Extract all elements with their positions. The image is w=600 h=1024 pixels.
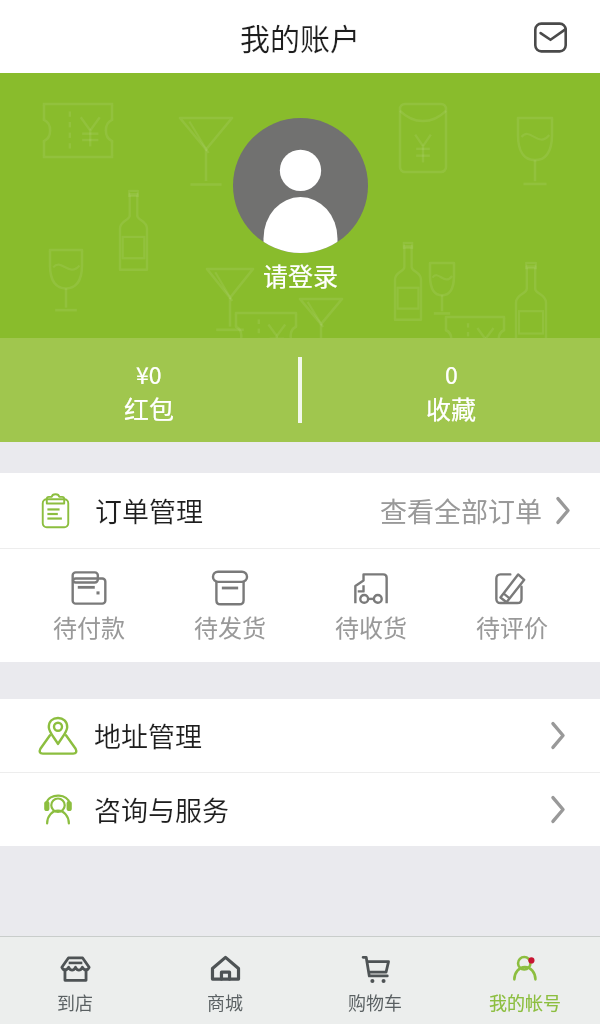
button[interactable]: 待收货 (300, 549, 441, 662)
staticText: 收藏 (426, 390, 477, 426)
staticText: 咨询与服务 (94, 790, 229, 829)
staticText: 我的帐号 (489, 989, 561, 1015)
staticText: 购物车 (348, 989, 402, 1015)
staticText: 待收货 (335, 609, 407, 644)
button[interactable]: 咨询与服务 (0, 773, 600, 846)
staticText: 0 (445, 357, 458, 390)
staticText: ¥0 (136, 357, 162, 390)
button[interactable]: 待评价 (441, 549, 582, 662)
staticText: 待评价 (476, 609, 548, 644)
staticText: 待付款 (53, 609, 125, 644)
button[interactable]: 购物车 (300, 937, 450, 1024)
button[interactable]: 到店 (0, 937, 150, 1024)
staticText: 红包 (124, 390, 175, 426)
button[interactable]: 商城 (150, 937, 300, 1024)
staticText: 我的账户 (240, 15, 360, 58)
button[interactable]: Avatar (233, 118, 368, 253)
staticText: 地址管理 (94, 716, 202, 755)
staticText: 商城 (207, 989, 243, 1015)
staticText: 订单管理 (95, 491, 203, 530)
button[interactable]: ¥0 (0, 354, 298, 426)
staticText: 到店 (57, 989, 93, 1015)
button[interactable]: Messages (524, 11, 576, 63)
button[interactable]: 待付款 (18, 549, 159, 662)
staticText: 待发货 (194, 609, 266, 644)
button[interactable]: 地址管理 (0, 699, 600, 772)
button[interactable]: 请登录 (263, 257, 339, 293)
button[interactable]: 0 (302, 354, 600, 426)
button[interactable]: 订单管理 (0, 473, 600, 548)
button[interactable]: 我的帐号 (450, 937, 600, 1024)
button[interactable]: 待发货 (159, 549, 300, 662)
staticText: 查看全部订单 (380, 491, 542, 530)
